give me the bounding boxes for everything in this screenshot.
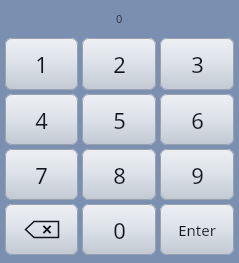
staticText: 0 bbox=[113, 215, 126, 245]
staticText: 5 bbox=[113, 105, 126, 135]
staticText: 9 bbox=[191, 160, 204, 190]
button[interactable]: 5 bbox=[82, 94, 156, 145]
button[interactable]: 8 bbox=[82, 149, 156, 200]
button[interactable]: Backspace bbox=[5, 204, 78, 255]
staticText: 7 bbox=[35, 160, 48, 190]
button[interactable]: 6 bbox=[160, 94, 234, 145]
staticText: 6 bbox=[191, 105, 204, 135]
staticText: 1 bbox=[35, 49, 48, 79]
button[interactable]: 2 bbox=[82, 38, 156, 90]
staticText: 4 bbox=[35, 105, 48, 135]
staticText: 3 bbox=[191, 49, 204, 79]
button[interactable]: 7 bbox=[5, 149, 78, 200]
button[interactable]: 1 bbox=[5, 38, 78, 90]
button[interactable]: Enter bbox=[160, 204, 234, 255]
button[interactable]: 4 bbox=[5, 94, 78, 145]
button[interactable]: 9 bbox=[160, 149, 234, 200]
button[interactable]: 3 bbox=[160, 38, 234, 90]
staticText: Enter bbox=[178, 220, 216, 240]
staticText: 0 bbox=[116, 11, 123, 26]
staticText: 2 bbox=[113, 49, 126, 79]
button[interactable]: 0 bbox=[82, 204, 156, 255]
staticText: 8 bbox=[113, 160, 126, 190]
